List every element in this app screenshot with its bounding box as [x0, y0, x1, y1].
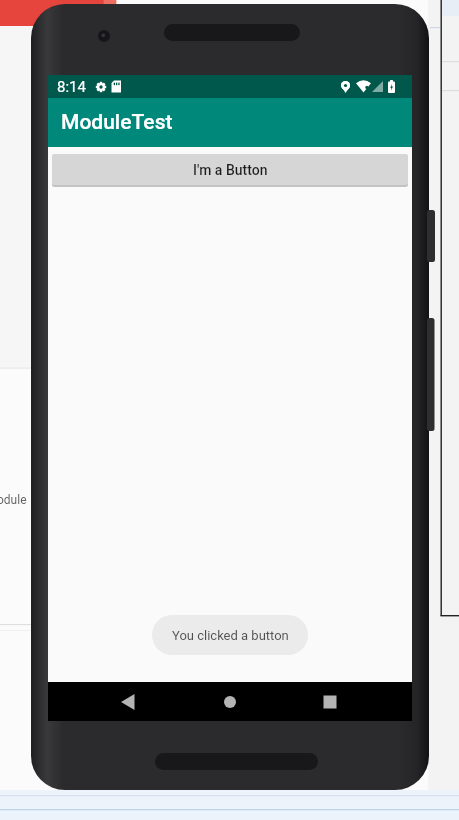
staticText: ModuleTest	[61, 110, 173, 135]
button[interactable]: I'm a Button	[52, 154, 408, 185]
staticText: odule	[0, 493, 27, 507]
staticText: You clicked a button	[172, 628, 289, 643]
staticText: 8:14	[57, 78, 86, 96]
staticText: I'm a Button	[193, 162, 268, 178]
button[interactable]	[108, 682, 148, 721]
button[interactable]	[310, 682, 350, 721]
button[interactable]	[210, 682, 250, 721]
